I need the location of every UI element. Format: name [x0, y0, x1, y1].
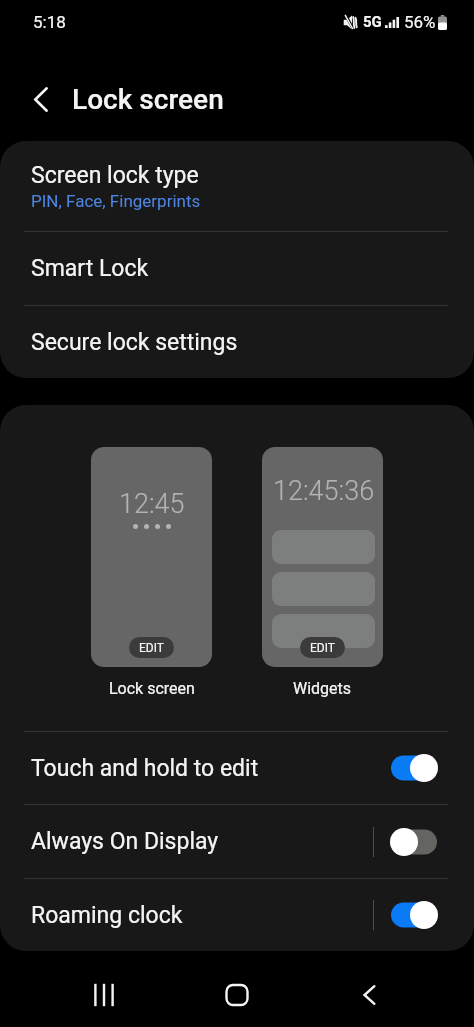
staticText: Secure lock settings — [31, 329, 238, 356]
button[interactable]: Home — [207, 965, 267, 1025]
staticText: EDIT — [139, 641, 164, 655]
button[interactable]: Turn off — [386, 898, 442, 932]
button[interactable]: Lock screen preview — [91, 447, 212, 667]
button[interactable]: Turn on — [386, 825, 442, 859]
staticText: 56% — [404, 12, 436, 32]
staticText: 5:18 — [33, 12, 66, 32]
button[interactable]: Roaming clock — [0, 879, 474, 951]
staticText: Lock screen — [72, 83, 224, 116]
staticText: 12:45 — [119, 488, 185, 520]
staticText: Widgets — [293, 679, 352, 698]
staticText: Lock screen — [109, 679, 195, 698]
button[interactable]: Smart Lock — [0, 232, 474, 305]
staticText: 12:45:36 — [273, 475, 375, 507]
button[interactable]: Turn off — [386, 751, 442, 785]
staticText: Touch and hold to edit — [31, 755, 259, 782]
button[interactable]: EDIT — [300, 637, 345, 658]
staticText: Smart Lock — [31, 255, 149, 282]
button[interactable]: Navigate up — [17, 75, 65, 123]
staticText: 5G — [363, 13, 382, 31]
staticText: Roaming clock — [31, 902, 183, 929]
button[interactable]: Widgets preview — [262, 447, 383, 667]
button[interactable]: Back — [340, 965, 400, 1025]
button[interactable]: Secure lock settings — [0, 306, 474, 378]
staticText: Screen lock type — [31, 162, 199, 189]
staticText: PIN, Face, Fingerprints — [31, 191, 201, 211]
button[interactable]: EDIT — [129, 637, 174, 658]
staticText: EDIT — [310, 641, 335, 655]
button[interactable]: Always On Display — [0, 805, 474, 878]
button[interactable]: Recents — [74, 965, 134, 1025]
button[interactable]: Touch and hold to edit — [0, 732, 474, 804]
button[interactable]: Screen lock type — [0, 141, 474, 231]
staticText: Always On Display — [31, 828, 219, 855]
